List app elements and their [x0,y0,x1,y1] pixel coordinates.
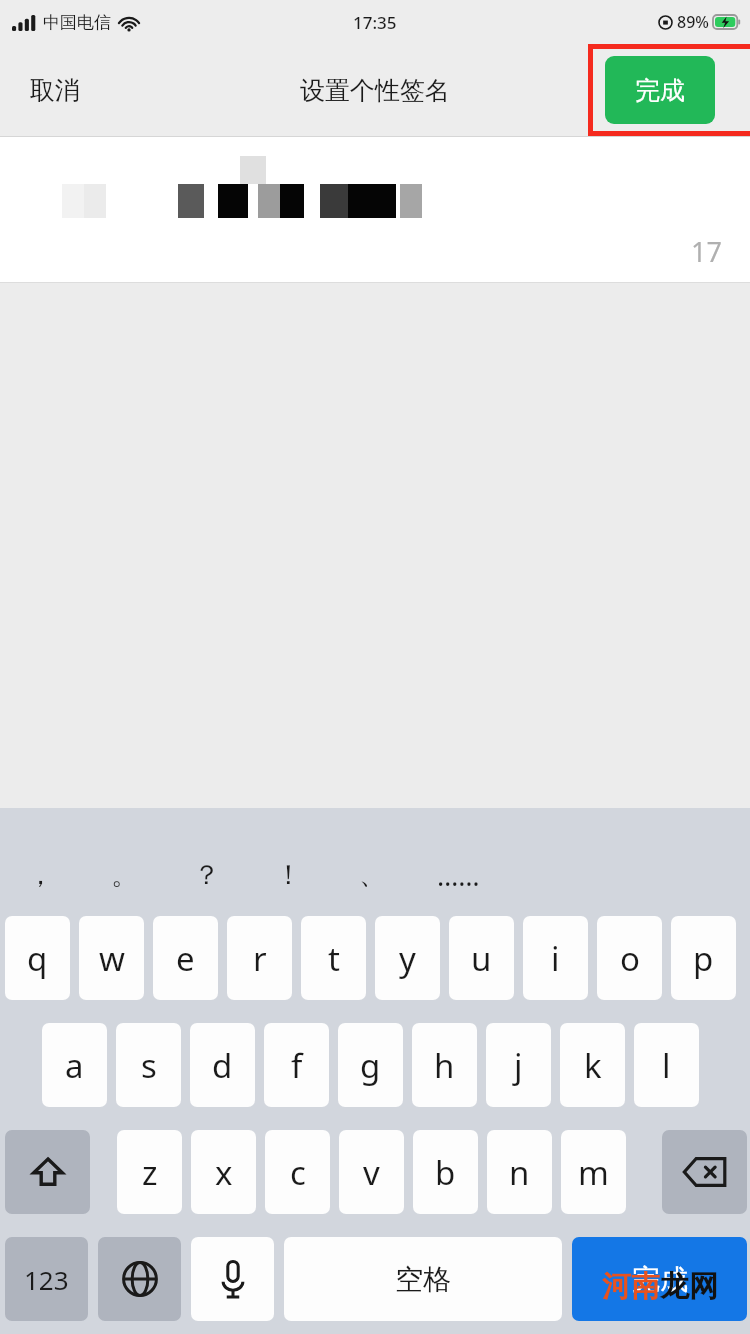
staticText: k [584,1043,602,1088]
staticText: f [291,1043,303,1088]
staticText: v [363,1150,380,1195]
button[interactable]: i [523,916,588,1000]
staticText: 龙网 [660,1268,718,1305]
button[interactable]: w [79,916,144,1000]
staticText: 、 [359,858,386,892]
button[interactable]: x [191,1130,256,1214]
button[interactable]: b [413,1130,478,1214]
button[interactable]: o [597,916,662,1000]
button[interactable]: d [190,1023,255,1107]
button[interactable]: 。 [96,850,152,900]
button[interactable]: k [560,1023,625,1107]
staticText: 。 [111,858,138,892]
staticText: r [253,936,267,981]
button[interactable]: ！ [260,850,316,900]
staticText: 完成 [632,1262,688,1297]
staticText: i [551,936,560,981]
staticText: d [212,1043,233,1088]
button[interactable]: j [486,1023,551,1107]
staticText: ， [27,858,54,892]
staticText: 设置个性签名 [300,75,450,106]
button[interactable]: t [301,916,366,1000]
staticText: ？ [193,858,220,892]
staticText: n [509,1150,530,1195]
staticText: 123 [24,1262,69,1297]
button[interactable]: v [339,1130,404,1214]
button[interactable]: n [487,1130,552,1214]
staticText: 取消 [30,75,80,106]
button[interactable]: 完成 [572,1237,747,1321]
staticText: j [514,1043,523,1088]
button[interactable]: Switch language [98,1237,181,1321]
button[interactable]: 空格 [284,1237,562,1321]
staticText: m [578,1150,609,1195]
button[interactable]: s [116,1023,181,1107]
button[interactable]: u [449,916,514,1000]
staticText: l [662,1043,671,1088]
button[interactable]: 取消 [22,67,88,114]
staticText: 河南 [602,1268,660,1305]
button[interactable]: 123 [5,1237,88,1321]
button[interactable]: h [412,1023,477,1107]
button[interactable]: …… [430,850,486,900]
button[interactable]: ？ [178,850,234,900]
button[interactable]: Backspace [662,1130,747,1214]
staticText: c [290,1150,306,1195]
button[interactable]: f [264,1023,329,1107]
staticText: 89% [677,11,709,33]
staticText: t [328,936,340,981]
staticText: h [434,1043,455,1088]
button[interactable]: Shift [5,1130,90,1214]
staticText: 中国电信 [43,12,111,33]
button[interactable]: a [42,1023,107,1107]
staticText: s [141,1043,157,1088]
button[interactable]: Voice input [191,1237,274,1321]
staticText: o [620,936,640,981]
button[interactable]: e [153,916,218,1000]
staticText: g [360,1043,381,1088]
staticText: a [65,1043,84,1088]
button[interactable]: p [671,916,736,1000]
staticText: w [99,936,125,981]
button[interactable]: c [265,1130,330,1214]
staticText: 空格 [395,1262,451,1297]
staticText: u [471,936,492,981]
button[interactable]: y [375,916,440,1000]
staticText: 17:35 [353,11,397,34]
button[interactable]: l [634,1023,699,1107]
button[interactable]: z [117,1130,182,1214]
staticText: e [176,936,195,981]
button[interactable]: 、 [344,850,400,900]
staticText: …… [437,857,480,894]
button[interactable]: ， [12,850,68,900]
button[interactable]: g [338,1023,403,1107]
staticText: b [435,1150,456,1195]
button[interactable]: m [561,1130,626,1214]
staticText: ！ [275,858,302,892]
button[interactable]: 完成 [605,56,715,124]
staticText: q [27,936,48,981]
button[interactable]: q [5,916,70,1000]
staticText: p [693,936,714,981]
staticText: x [215,1150,233,1195]
staticText: 17 [691,233,722,270]
staticText: z [142,1150,158,1195]
button[interactable]: r [227,916,292,1000]
staticText: y [399,936,416,981]
staticText: 完成 [635,75,685,106]
